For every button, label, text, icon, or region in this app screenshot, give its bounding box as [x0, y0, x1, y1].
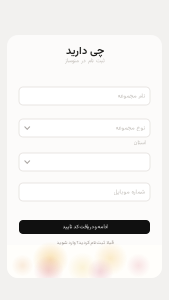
- staticText: ثبت نام در منوساز: [64, 57, 104, 65]
- staticText: ادامه و دریافت کد تایید: [62, 223, 107, 231]
- button[interactable]: نوع مجموعه: [19, 119, 150, 137]
- staticText: نام مجموعه: [117, 91, 145, 101]
- button[interactable]: شماره موبایل: [19, 183, 150, 201]
- staticText: نوع مجموعه: [115, 123, 145, 133]
- staticText: چی دارید: [65, 43, 103, 60]
- staticText: شماره موبایل: [113, 187, 145, 197]
- button[interactable]: [19, 153, 150, 171]
- staticText: استان: [133, 139, 145, 147]
- staticText: قبلا ثبت نام کردید؟ وارد شوید: [56, 239, 113, 247]
- button[interactable]: نام مجموعه: [19, 87, 150, 105]
- button[interactable]: ادامه و دریافت کد تایید: [19, 220, 150, 234]
- button[interactable]: قبلا ثبت نام کردید؟ وارد شوید: [52, 238, 117, 248]
